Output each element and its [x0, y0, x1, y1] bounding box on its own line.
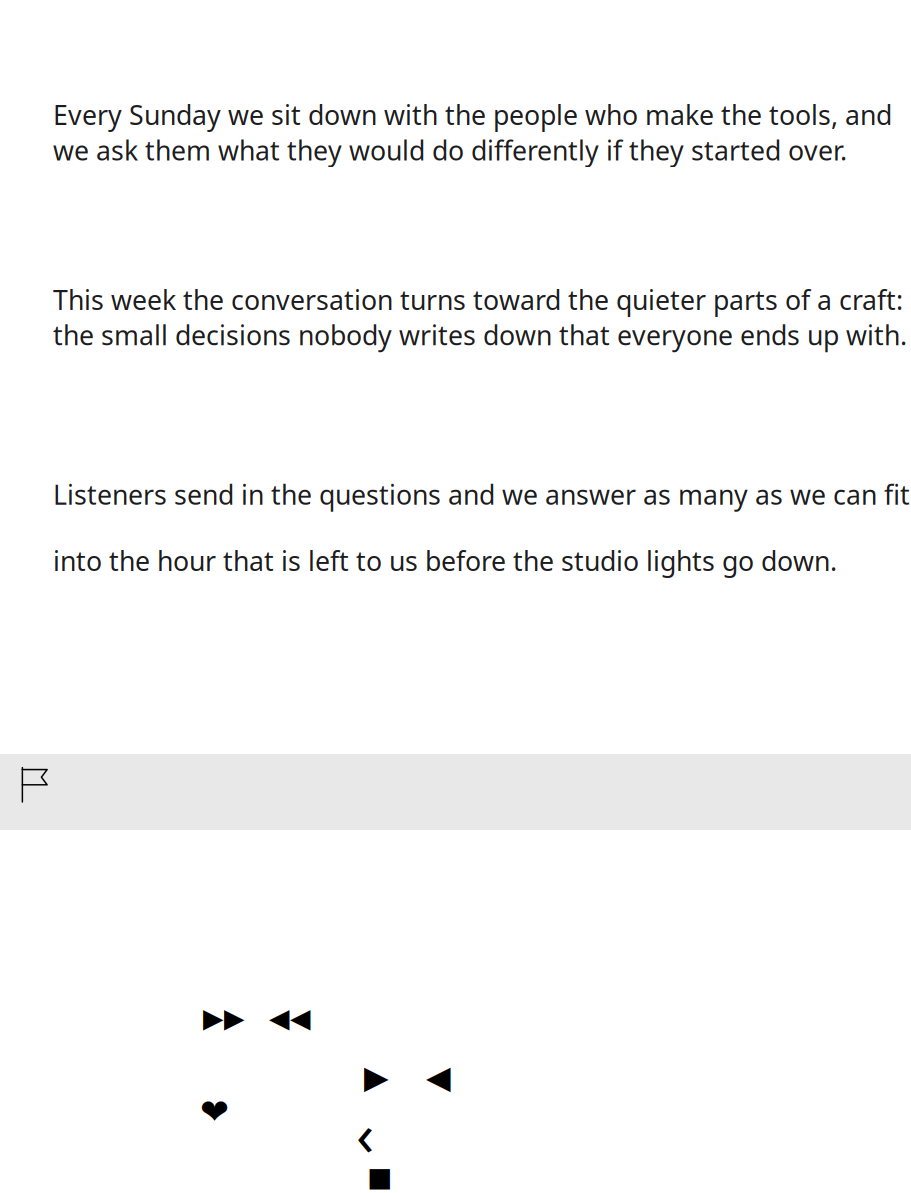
- staticText: Every Sunday we sit down with the people…: [53, 97, 892, 132]
- staticText: ▶: [364, 1059, 389, 1095]
- staticText: ▶▶: [203, 1003, 245, 1033]
- staticText: Listeners send in the questions and we a…: [53, 477, 910, 512]
- staticText: the small decisions nobody writes down t…: [53, 317, 907, 353]
- button[interactable]: Skip forward: [203, 1003, 245, 1033]
- staticText: ◀: [426, 1059, 451, 1095]
- staticText: ‹: [356, 1094, 374, 1172]
- staticText: This week the conversation turns toward …: [53, 282, 903, 317]
- staticText: ❤: [200, 1092, 229, 1131]
- button[interactable]: Favourite: [200, 1092, 229, 1131]
- button[interactable]: Back: [356, 1094, 374, 1172]
- staticText: ■: [367, 1162, 392, 1192]
- staticText: ◀◀: [269, 1003, 311, 1033]
- button[interactable]: Skip back: [269, 1003, 311, 1033]
- button[interactable]: Stop: [367, 1162, 392, 1192]
- button[interactable]: Previous: [426, 1059, 451, 1095]
- button[interactable]: Play: [364, 1059, 389, 1095]
- button[interactable]: Flagged passage: [0, 754, 911, 830]
- staticText: into the hour that is left to us before …: [53, 543, 837, 578]
- staticText: we ask them what they would do different…: [53, 132, 847, 168]
